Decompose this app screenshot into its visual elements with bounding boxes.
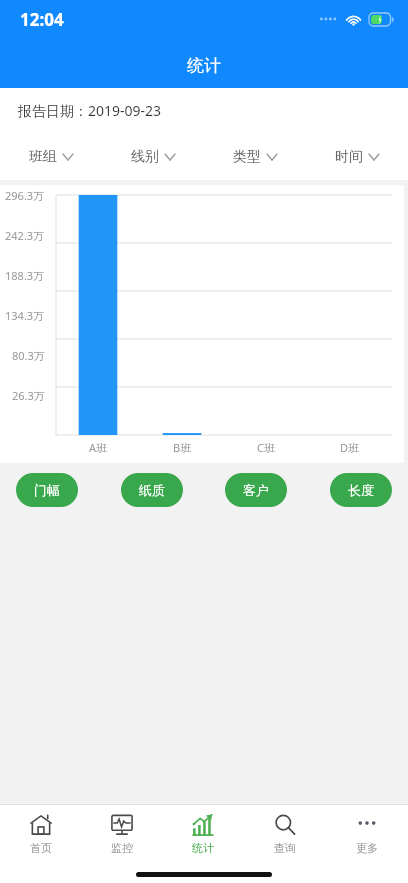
staticText: 报告日期：2019-09-23 xyxy=(18,101,162,120)
button[interactable]: 首页 xyxy=(0,805,81,863)
button[interactable]: 门幅 xyxy=(16,473,78,507)
staticText: 类型 xyxy=(233,148,261,166)
staticText: 门幅 xyxy=(34,482,60,498)
staticText: 统计 xyxy=(192,841,214,855)
button[interactable]: 更多 xyxy=(326,805,408,863)
other: 监控 xyxy=(110,813,134,837)
staticText: 296.3万 xyxy=(5,188,45,203)
staticText: C班 xyxy=(257,440,275,455)
button[interactable]: 统计 xyxy=(162,805,244,863)
staticText: 统计 xyxy=(187,55,221,76)
staticText: 线别 xyxy=(131,148,159,166)
staticText: A班 xyxy=(89,440,108,455)
button[interactable]: 线别 xyxy=(102,133,204,180)
staticText: 134.3万 xyxy=(5,308,45,323)
button[interactable]: 监控 xyxy=(81,805,162,863)
staticText: 纸质 xyxy=(139,482,165,498)
button[interactable]: 纸质 xyxy=(121,473,183,507)
staticText: 80.3万 xyxy=(12,348,45,363)
button[interactable]: 长度 xyxy=(330,473,392,507)
staticText: 监控 xyxy=(111,841,133,855)
button[interactable]: 时间 xyxy=(306,133,408,180)
staticText: 时间 xyxy=(335,148,363,166)
staticText: 查询 xyxy=(274,841,296,855)
staticText: 客户 xyxy=(243,482,269,498)
other: 更多 xyxy=(355,813,379,837)
staticText: 班组 xyxy=(29,148,57,166)
staticText: 长度 xyxy=(348,482,374,498)
staticText: 更多 xyxy=(356,841,378,855)
button[interactable]: 查询 xyxy=(244,805,326,863)
button[interactable]: 类型 xyxy=(204,133,306,180)
button[interactable]: 班组 xyxy=(0,133,102,180)
staticText: 12:04 xyxy=(20,8,64,31)
staticText: 188.3万 xyxy=(5,268,45,283)
staticText: 首页 xyxy=(30,841,52,855)
staticText: D班 xyxy=(340,440,360,455)
staticText: 26.3万 xyxy=(12,388,45,403)
other: 查询 xyxy=(273,813,297,837)
staticText: B班 xyxy=(173,440,192,455)
other: 首页 xyxy=(29,813,53,837)
other: 统计 xyxy=(191,813,215,837)
button[interactable]: 客户 xyxy=(225,473,287,507)
staticText: 242.3万 xyxy=(5,228,45,243)
